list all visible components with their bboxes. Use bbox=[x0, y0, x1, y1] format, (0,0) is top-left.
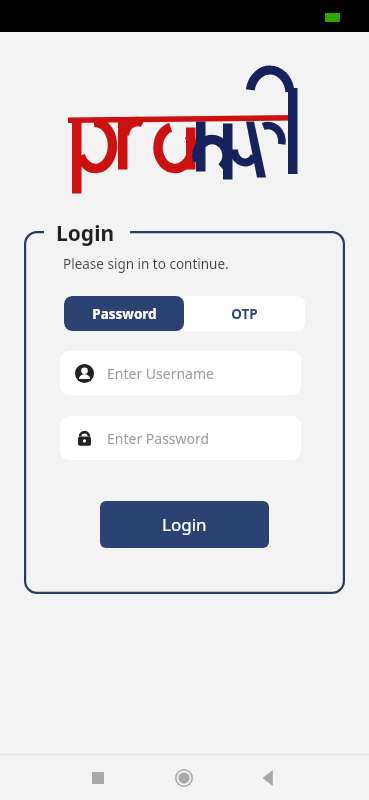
staticText: Password bbox=[92, 305, 157, 323]
button[interactable]: Login bbox=[100, 501, 269, 548]
staticText: Login bbox=[162, 513, 207, 536]
button[interactable]: Back bbox=[244, 755, 292, 800]
button[interactable]: OTP bbox=[184, 296, 305, 331]
staticText: Login bbox=[56, 219, 115, 248]
staticText: Enter Username bbox=[107, 364, 214, 383]
button[interactable]: Enter Username bbox=[60, 351, 301, 395]
button[interactable]: Enter Password bbox=[60, 416, 301, 460]
button[interactable]: Home bbox=[160, 755, 208, 800]
staticText: Please sign in to continue. bbox=[63, 255, 229, 273]
staticText: OTP bbox=[231, 305, 258, 323]
button[interactable]: Password bbox=[64, 296, 184, 331]
button[interactable]: Recent apps bbox=[74, 755, 122, 800]
staticText: Enter Password bbox=[107, 429, 210, 448]
